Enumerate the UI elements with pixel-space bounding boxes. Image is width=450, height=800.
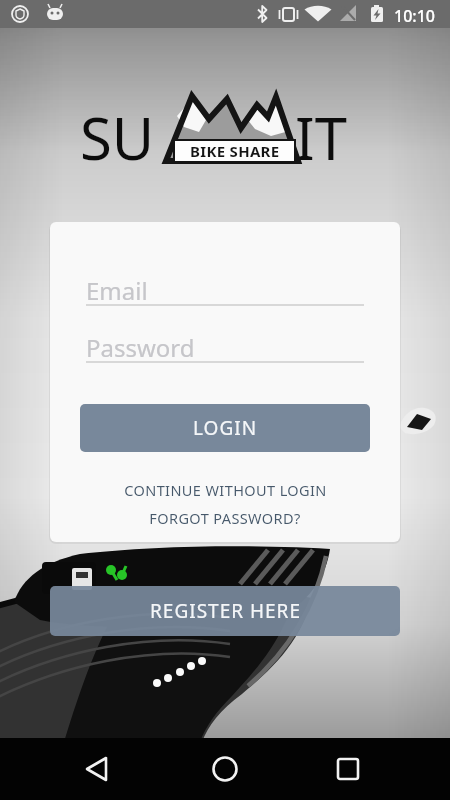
button[interactable] — [315, 742, 385, 796]
staticText: REGISTER HERE — [150, 598, 301, 624]
staticText: CONTINUE WITHOUT LOGIN — [124, 480, 327, 500]
staticText: BIKE SHARE — [190, 141, 280, 161]
staticText: 10:10 — [394, 5, 435, 27]
button[interactable]: REGISTER HERE — [50, 586, 400, 636]
staticText: IT — [295, 98, 347, 177]
button[interactable] — [190, 742, 260, 796]
staticText: SU — [80, 98, 155, 177]
button[interactable]: FORGOT PASSWORD? — [50, 506, 400, 530]
button[interactable]: Password — [86, 331, 195, 364]
button[interactable] — [65, 742, 135, 796]
button[interactable]: CONTINUE WITHOUT LOGIN — [50, 478, 400, 502]
button[interactable]: LOGIN — [80, 404, 370, 452]
staticText: FORGOT PASSWORD? — [149, 508, 301, 528]
button[interactable]: Email — [86, 274, 148, 307]
staticText: LOGIN — [193, 415, 258, 441]
